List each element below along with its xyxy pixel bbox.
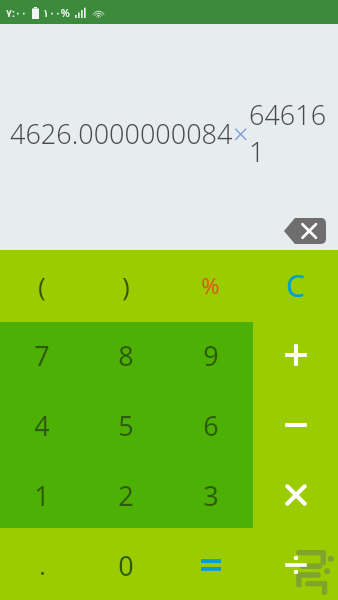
- staticText: 4: [34, 407, 50, 444]
- button[interactable]: 6: [168, 390, 253, 460]
- button[interactable]: equals: [168, 530, 253, 600]
- button[interactable]: 0: [84, 530, 168, 600]
- staticText: ۱۰۰%: [43, 5, 70, 20]
- staticText: %: [201, 270, 220, 300]
- staticText: 8: [118, 337, 134, 374]
- staticText: 4626.0000000084: [10, 115, 233, 152]
- staticText: ×: [233, 115, 249, 152]
- button[interactable]: ): [84, 250, 168, 320]
- button[interactable]: divide: [253, 530, 338, 600]
- button[interactable]: (: [0, 250, 84, 320]
- button[interactable]: plus: [253, 320, 338, 390]
- staticText: 3: [203, 477, 219, 514]
- staticText: ): [122, 268, 130, 303]
- staticText: 2: [118, 477, 134, 514]
- button[interactable]: 4: [0, 390, 84, 460]
- staticText: .: [39, 549, 46, 582]
- button[interactable]: C: [253, 250, 338, 320]
- button[interactable]: times: [253, 460, 338, 530]
- button[interactable]: 7: [0, 320, 84, 390]
- button[interactable]: Backspace: [284, 218, 326, 244]
- button[interactable]: minus: [253, 390, 338, 460]
- button[interactable]: 2: [84, 460, 168, 530]
- button[interactable]: 1: [0, 460, 84, 530]
- button[interactable]: .: [0, 530, 84, 600]
- staticText: (: [38, 268, 46, 303]
- staticText: 646161: [249, 96, 328, 170]
- staticText: 6: [203, 407, 219, 444]
- button[interactable]: 8: [84, 320, 168, 390]
- staticText: 5: [118, 407, 134, 444]
- button[interactable]: 5: [84, 390, 168, 460]
- button[interactable]: 3: [168, 460, 253, 530]
- staticText: C: [286, 265, 305, 306]
- staticText: 7: [34, 337, 50, 374]
- staticText: ۷:۰۰: [6, 5, 27, 20]
- staticText: 9: [203, 337, 219, 374]
- button[interactable]: 9: [168, 320, 253, 390]
- staticText: 0: [118, 547, 134, 584]
- button[interactable]: %: [168, 250, 253, 320]
- staticText: 1: [34, 477, 50, 514]
